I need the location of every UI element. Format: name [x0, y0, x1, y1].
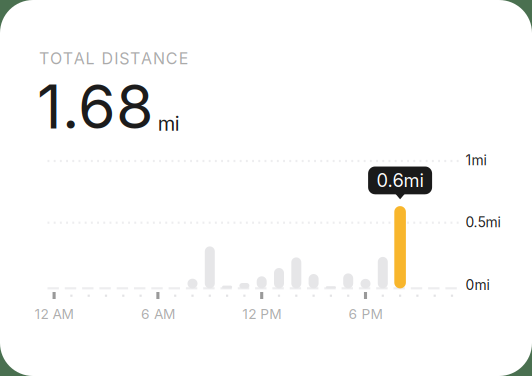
- staticText: T: [39, 49, 49, 68]
- button[interactable]: 19:00 bar: [378, 257, 388, 288]
- staticText: O: [50, 49, 62, 68]
- button[interactable]: 13:00 bar: [274, 268, 284, 288]
- staticText: C: [166, 49, 178, 68]
- button[interactable]: 17:00 bar: [343, 273, 353, 288]
- staticText: L: [86, 49, 95, 68]
- staticText: 1mi: [465, 152, 486, 168]
- button[interactable]: 11:00 bar: [239, 283, 249, 288]
- button[interactable]: 8 PM, 0.6 miles, selected: [394, 206, 406, 288]
- button[interactable]: 12:00 bar: [257, 276, 267, 288]
- button[interactable]: 14:00 bar: [291, 257, 301, 288]
- staticText: 12 AM: [35, 306, 74, 322]
- button[interactable]: 16:00 bar: [326, 286, 336, 288]
- staticText: mi: [158, 111, 180, 136]
- staticText: 6 AM: [141, 306, 175, 322]
- staticText: T: [130, 49, 140, 68]
- staticText: A: [74, 49, 85, 68]
- button[interactable]: 8:00 bar: [187, 279, 197, 288]
- staticText: 6 PM: [348, 306, 382, 322]
- staticText: D: [101, 49, 113, 68]
- staticText: S: [119, 49, 129, 68]
- staticText: 0.6mi: [377, 169, 424, 191]
- staticText: 0mi: [465, 277, 489, 293]
- staticText: T: [63, 49, 73, 68]
- button[interactable]: 9:00 bar: [205, 246, 215, 288]
- staticText: 0.5mi: [465, 214, 500, 231]
- button[interactable]: 15:00 bar: [309, 274, 319, 288]
- staticText: N: [153, 49, 165, 68]
- staticText: 12 PM: [242, 306, 281, 322]
- staticText: 1.68: [37, 70, 154, 143]
- staticText: E: [179, 49, 189, 68]
- staticText: A: [141, 49, 152, 68]
- button[interactable]: 18:00 bar: [360, 279, 370, 288]
- staticText: I: [114, 49, 118, 68]
